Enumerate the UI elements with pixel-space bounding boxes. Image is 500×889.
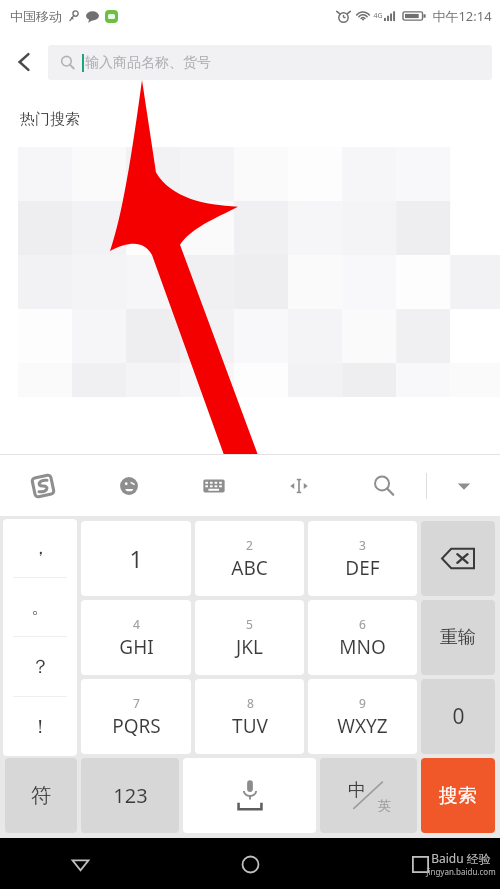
button[interactable]: Delete [421,521,495,596]
button[interactable]: 3 [308,521,417,596]
button[interactable]: Recent apps [398,842,442,886]
button[interactable]: 。 [3,578,77,636]
staticText: 中国移动 [10,8,62,24]
button[interactable]: 6 [308,600,417,675]
staticText: 0 [452,702,465,731]
button[interactable]: ， [3,519,77,577]
staticText: 中午12:14 [432,7,492,25]
button[interactable]: 4 [81,600,191,675]
button[interactable]: 输入商品名称、货号 [48,45,492,80]
staticText: ？ [31,655,50,679]
staticText: 符 [31,783,51,808]
staticText: 8 [247,695,254,711]
button[interactable]: Keyboard layout [171,455,256,516]
staticText: ！ [31,715,50,739]
button[interactable]: Emoji [86,455,171,516]
staticText: ABC [231,555,268,581]
button[interactable]: Back [58,842,102,886]
button[interactable]: Home [228,842,272,886]
button[interactable]: Back [0,32,48,92]
button[interactable]: ？ [3,637,77,696]
staticText: 热门搜索 [20,110,80,129]
button[interactable]: 重输 [421,600,495,675]
button[interactable]: 1 [81,521,191,596]
button[interactable]: Move cursor [256,455,341,516]
button[interactable]: 123 [81,758,179,833]
staticText: 。 [31,595,50,619]
staticText: 1 [129,543,143,574]
staticText: DEF [345,555,380,581]
staticText: 4G [373,11,383,21]
staticText: MNO [339,634,386,660]
staticText: 中 [348,779,366,802]
button[interactable]: Search [341,455,426,516]
button[interactable]: 7 [81,679,191,754]
staticText: ， [31,536,50,560]
staticText: 输入商品名称、货号 [85,54,211,72]
button[interactable]: 符 [5,758,77,833]
staticText: 3 [359,537,366,553]
staticText: PQRS [112,713,161,739]
staticText: 搜索 [439,784,477,808]
staticText: 2 [246,537,253,553]
button[interactable]: Chinese English toggle [320,758,417,833]
button[interactable]: 0 [421,679,495,754]
staticText: 6 [359,616,366,632]
button[interactable]: 2 [195,521,304,596]
staticText: Baidu 经验 [431,850,491,866]
staticText: jingyan.baidu.com [426,866,496,877]
button[interactable]: 9 [308,679,417,754]
staticText: GHI [119,634,154,660]
button[interactable]: 5 [195,600,304,675]
staticText: 4 [133,616,140,632]
staticText: JKL [236,634,263,660]
staticText: TUV [232,713,268,739]
staticText: 9 [359,695,366,711]
button[interactable]: 搜索 [421,758,495,833]
staticText: WXYZ [337,713,388,739]
button[interactable]: 8 [195,679,304,754]
staticText: 123 [113,782,148,809]
staticText: 重输 [440,626,476,649]
button[interactable]: ！ [3,697,77,756]
staticText: 5 [246,616,253,632]
staticText: 7 [133,695,140,711]
staticText: 英 [378,797,391,813]
button[interactable]: Space and voice input [183,758,316,833]
button[interactable]: Sogou input method [0,455,86,516]
button[interactable]: Hide keyboard [427,455,500,516]
